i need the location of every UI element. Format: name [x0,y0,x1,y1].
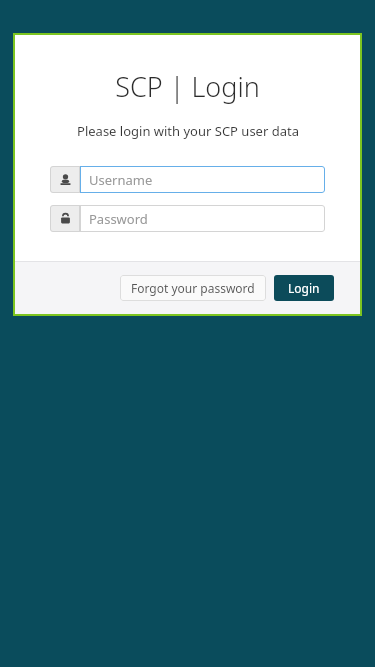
staticText: Please login with your SCP user data [77,122,299,140]
button[interactable]: Username [80,166,325,193]
staticText: Login [288,280,320,296]
button[interactable]: User [50,166,80,193]
button[interactable]: Forgot your password [120,275,266,301]
staticText: Forgot your password [131,280,255,296]
staticText: Password [89,210,148,228]
button[interactable]: Password [50,205,80,232]
staticText: SCP | Login [115,68,260,105]
staticText: Username [89,171,153,189]
button[interactable]: Password [80,205,325,232]
button[interactable]: Login [274,275,334,301]
